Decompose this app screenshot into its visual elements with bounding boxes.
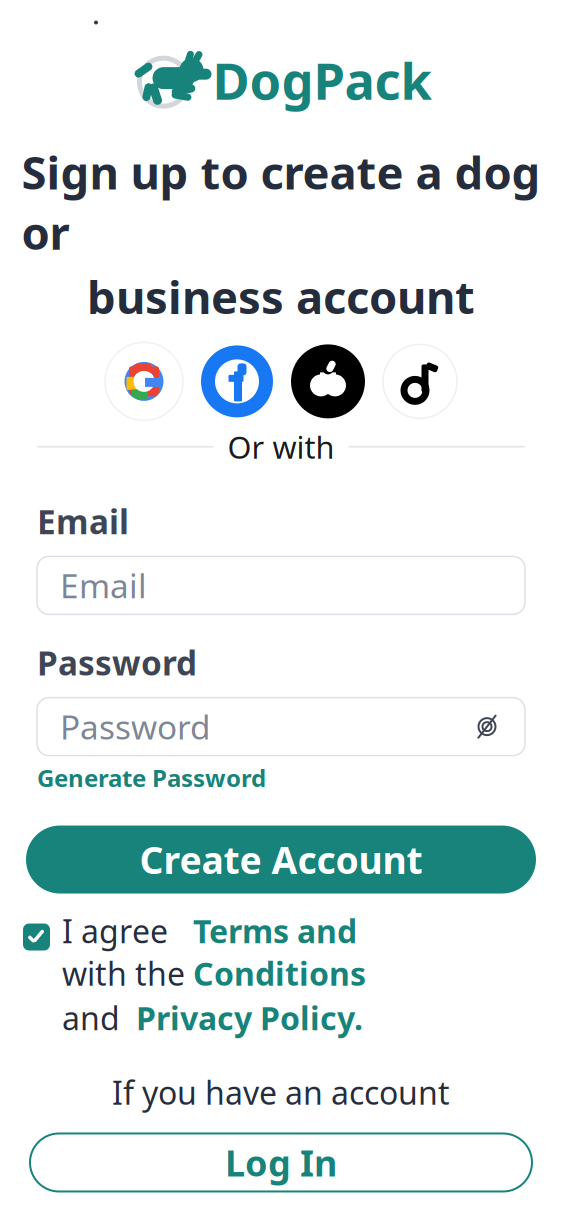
staticText: Create Account	[139, 835, 422, 884]
staticText: Email	[37, 499, 129, 543]
staticText: Terms and Conditions	[193, 909, 366, 994]
staticText: and	[62, 996, 136, 1039]
button[interactable]: Sign up with Apple	[291, 344, 365, 418]
staticText: Email	[60, 563, 147, 607]
staticText: Password	[60, 704, 211, 749]
staticText: Or with	[227, 426, 334, 467]
staticText: Privacy Policy.	[136, 996, 363, 1039]
button[interactable]: Sign up with Facebook	[201, 345, 273, 417]
staticText: Password	[37, 640, 197, 685]
button[interactable]: I agree with the	[0, 893, 562, 1039]
staticText: DogPack	[212, 46, 431, 114]
button[interactable]: Sign up with TikTok	[383, 344, 457, 418]
button[interactable]: Email	[37, 556, 525, 614]
staticText: Generate Password	[37, 762, 266, 793]
staticText: I agree with the	[62, 909, 193, 994]
staticText: Log In	[225, 1139, 337, 1186]
button[interactable]: Log In	[30, 1133, 532, 1191]
staticText: Sign up to create a dog or	[21, 142, 540, 262]
button[interactable]: Create Account	[26, 825, 536, 893]
button[interactable]: Generate Password	[37, 762, 525, 793]
button[interactable]: Sign up with Google	[105, 342, 183, 420]
button[interactable]: Password	[37, 698, 525, 756]
staticText: business account	[87, 266, 475, 326]
staticText: If you have an account	[112, 1071, 450, 1113]
